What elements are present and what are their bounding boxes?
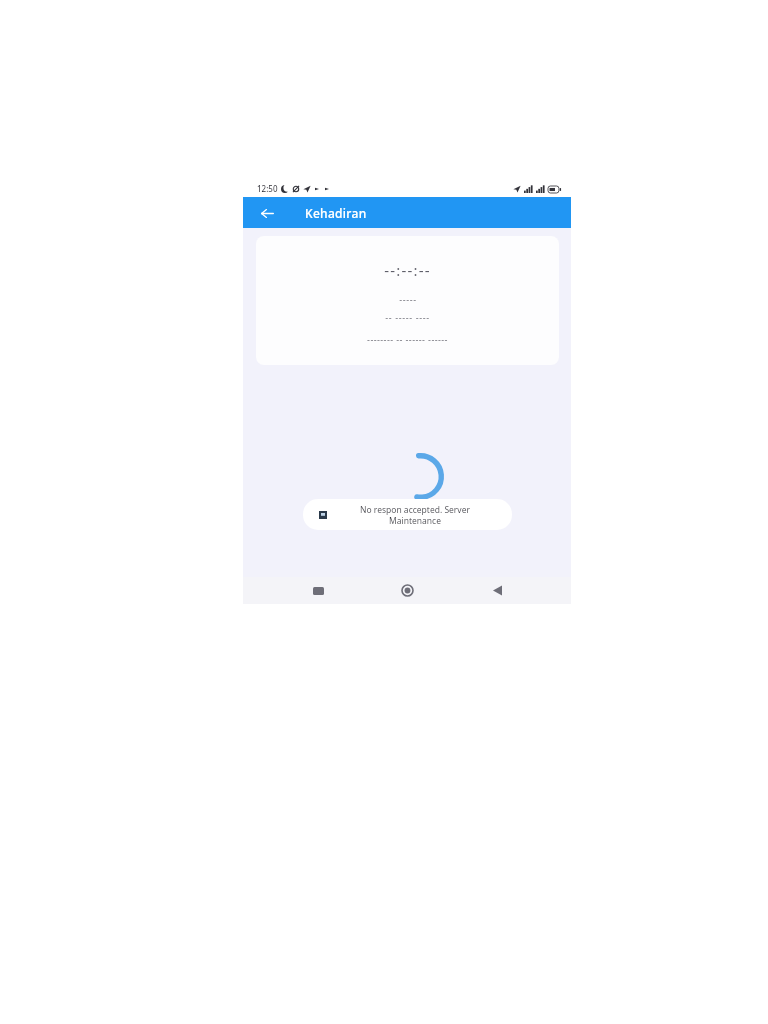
staticText: No respon accepted. Server Maintenance (360, 504, 470, 526)
staticText: 12:50 (257, 183, 278, 194)
other: Loading (397, 453, 444, 500)
button[interactable]: Back (482, 577, 512, 604)
staticText: -------- -- ------ ------ (367, 333, 448, 345)
button[interactable]: Home (392, 577, 422, 604)
button[interactable]: --:--:-- (256, 236, 559, 365)
staticText: ----- (399, 293, 417, 305)
button[interactable]: Recents (303, 577, 333, 604)
staticText: --:--:-- (384, 260, 431, 280)
staticText: -- ----- ---- (385, 311, 430, 323)
staticText: Kehadiran (305, 205, 367, 221)
button[interactable]: Back (257, 203, 277, 223)
